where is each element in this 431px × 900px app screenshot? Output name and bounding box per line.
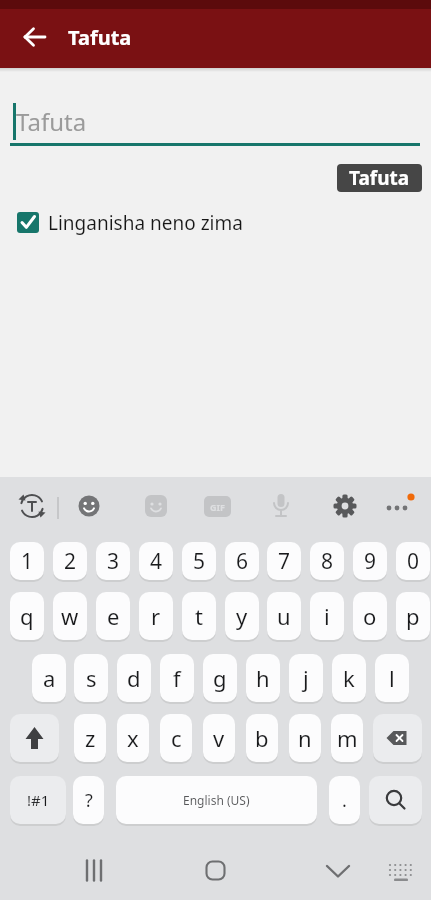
staticText: GIF (210, 501, 225, 513)
button[interactable]: 8 (310, 542, 344, 580)
button[interactable]: 7 (267, 542, 301, 580)
staticText: o (363, 601, 377, 631)
button[interactable] (80, 854, 112, 886)
button[interactable] (322, 855, 354, 887)
button[interactable] (10, 96, 421, 146)
staticText: Tafuta (349, 165, 410, 191)
button[interactable] (386, 858, 416, 884)
staticText: u (277, 601, 291, 631)
button[interactable]: t (182, 592, 216, 640)
button[interactable] (18, 20, 52, 54)
staticText: 3 (107, 547, 120, 576)
button[interactable]: 3 (96, 542, 130, 580)
button[interactable] (369, 776, 422, 824)
button[interactable]: b (246, 714, 278, 762)
button[interactable] (333, 494, 357, 518)
staticText: . (342, 788, 347, 813)
button[interactable]: h (246, 654, 280, 702)
button[interactable]: p (396, 592, 430, 640)
staticText: k (343, 663, 355, 693)
staticText: v (213, 723, 225, 753)
staticText: z (85, 723, 96, 753)
staticText: n (298, 723, 312, 753)
button[interactable]: k (332, 654, 366, 702)
staticText: e (107, 601, 120, 631)
staticText: 9 (364, 547, 377, 576)
button[interactable]: l (375, 654, 409, 702)
staticText: r (151, 601, 161, 631)
button[interactable]: j (289, 654, 323, 702)
button[interactable]: q (10, 592, 44, 640)
button[interactable]: o (353, 592, 387, 640)
button[interactable]: f (160, 654, 194, 702)
staticText: Tafuta (16, 105, 87, 138)
staticText: Tafuta (68, 24, 132, 51)
button[interactable]: w (53, 592, 87, 640)
button[interactable]: 6 (225, 542, 259, 580)
staticText: s (86, 663, 97, 693)
staticText: t (195, 601, 203, 631)
button[interactable]: 1 (10, 542, 44, 580)
staticText: b (255, 723, 269, 753)
button[interactable]: i (310, 592, 344, 640)
button[interactable]: u (267, 592, 301, 640)
staticText: h (256, 663, 270, 693)
staticText: 1 (21, 547, 34, 576)
button[interactable]: d (117, 654, 151, 702)
button[interactable] (270, 492, 292, 522)
staticText: 5 (193, 547, 206, 576)
staticText: q (20, 601, 34, 631)
staticText: j (303, 663, 309, 693)
staticText: 2 (64, 547, 77, 576)
staticText: y (236, 601, 248, 631)
button[interactable]: 2 (53, 542, 87, 580)
button[interactable] (204, 496, 231, 517)
button[interactable]: . (329, 776, 360, 824)
button[interactable]: g (203, 654, 237, 702)
button[interactable]: c (160, 714, 192, 762)
button[interactable]: y (225, 592, 259, 640)
staticText: 4 (150, 547, 163, 576)
staticText: w (61, 601, 79, 631)
button[interactable]: English (US) (116, 776, 317, 824)
staticText: g (213, 663, 227, 693)
button[interactable]: ? (73, 776, 104, 824)
button[interactable] (10, 714, 59, 762)
button[interactable] (144, 494, 168, 518)
staticText: English (US) (183, 792, 250, 808)
button[interactable]: Tafuta (337, 164, 422, 192)
staticText: 6 (236, 547, 249, 576)
button[interactable]: !#1 (10, 776, 66, 824)
staticText: i (324, 601, 330, 631)
button[interactable]: z (74, 714, 106, 762)
button[interactable] (77, 494, 101, 518)
button[interactable] (17, 492, 47, 522)
staticText: !#1 (27, 790, 50, 810)
button[interactable] (200, 855, 231, 886)
staticText: d (127, 663, 141, 693)
button[interactable]: 9 (353, 542, 387, 580)
staticText: l (389, 663, 395, 693)
button[interactable]: e (96, 592, 130, 640)
button[interactable]: m (331, 714, 363, 762)
button[interactable]: r (139, 592, 173, 640)
staticText: m (337, 723, 358, 753)
button[interactable] (373, 714, 422, 762)
button[interactable]: a (32, 654, 66, 702)
button[interactable]: s (74, 654, 108, 702)
button[interactable]: 4 (139, 542, 173, 580)
button[interactable]: 0 (396, 542, 430, 580)
button[interactable]: v (203, 714, 235, 762)
staticText: 8 (321, 547, 334, 576)
staticText: a (43, 663, 56, 693)
staticText: f (173, 663, 181, 693)
staticText: 0 (407, 547, 420, 576)
button[interactable]: n (289, 714, 321, 762)
staticText: x (127, 723, 139, 753)
button[interactable] (10, 205, 270, 241)
button[interactable] (385, 490, 417, 516)
staticText: p (406, 601, 420, 631)
button[interactable]: x (117, 714, 149, 762)
staticText: ? (85, 788, 93, 813)
button[interactable]: 5 (182, 542, 216, 580)
